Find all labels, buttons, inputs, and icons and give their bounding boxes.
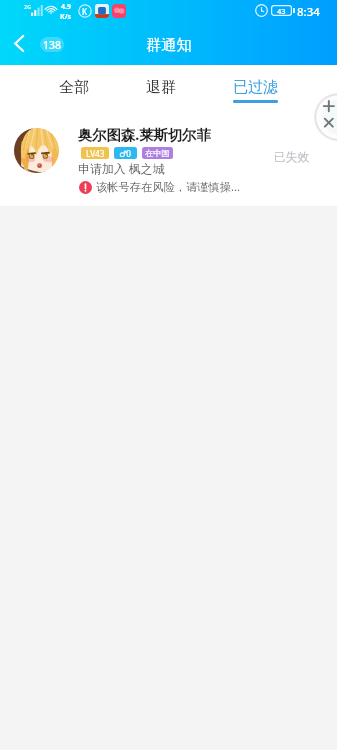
staticText: 在中国	[145, 148, 170, 158]
staticText: 2G	[24, 3, 32, 10]
staticText: 退群	[146, 78, 176, 97]
staticText: 已过滤	[233, 78, 278, 97]
staticText: 全部	[59, 78, 89, 97]
staticText: 43	[277, 6, 286, 16]
button[interactable]: 退群	[121, 65, 199, 106]
button[interactable]: 138	[40, 37, 64, 52]
button[interactable]: Back	[3, 24, 35, 62]
staticText: 8:34	[297, 4, 320, 20]
staticText: 奥尔图森.莱斯切尔菲	[78, 125, 211, 145]
staticText: K	[82, 6, 88, 17]
staticText: 4.9	[61, 2, 71, 12]
staticText: K/s	[60, 12, 72, 22]
staticText: ♂0	[119, 148, 132, 159]
button[interactable]: 奥尔图森.莱斯切尔菲	[0, 106, 337, 206]
staticText: 该帐号存在风险，请谨慎操...	[96, 179, 241, 194]
staticText: 申请加入 枫之城	[78, 160, 165, 176]
staticText: 群通知	[146, 35, 192, 54]
staticText: 138	[43, 38, 62, 52]
button[interactable]: Add or dismiss floating tool	[312, 91, 337, 143]
button[interactable]: 全部	[34, 65, 112, 106]
staticText: 已失效	[274, 150, 310, 165]
staticText: LV43	[86, 148, 105, 159]
button[interactable]: 已过滤	[216, 65, 294, 106]
